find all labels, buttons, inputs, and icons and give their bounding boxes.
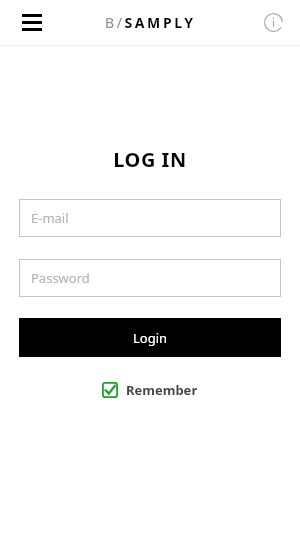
button[interactable]: Menu [14, 4, 50, 40]
staticText: Password [31, 269, 90, 287]
button[interactable]: E-mail [19, 199, 281, 237]
button[interactable]: Remember [98, 378, 202, 402]
button[interactable]: Login [19, 318, 281, 357]
button[interactable]: Password [19, 259, 281, 297]
staticText: B/SAMPLY [105, 13, 196, 32]
staticText: LOG IN [0, 146, 300, 173]
staticText: Remember [126, 381, 198, 399]
button[interactable]: Info [256, 5, 290, 39]
staticText: E-mail [31, 209, 69, 227]
staticText: Login [133, 329, 168, 347]
